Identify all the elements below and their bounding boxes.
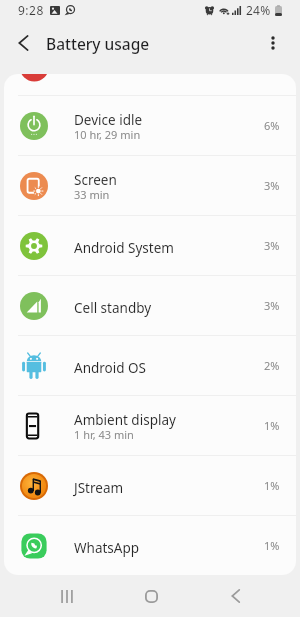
button[interactable]: Screen	[4, 156, 296, 215]
staticText: 6%	[264, 118, 280, 133]
staticText: Ambient display	[74, 411, 176, 429]
button[interactable]: Android System	[4, 216, 296, 275]
button[interactable]: WhatsApp	[4, 516, 296, 575]
staticText: 9:28	[18, 2, 44, 18]
staticText: 2%	[264, 358, 280, 373]
staticText: WhatsApp	[74, 539, 140, 557]
button[interactable]: Device idle	[4, 96, 296, 155]
button[interactable]: Back	[0, 20, 46, 66]
staticText: 24%	[246, 2, 271, 18]
staticText: Cell standby	[74, 299, 152, 317]
staticText: 1%	[264, 418, 280, 433]
staticText: 33 min	[74, 187, 110, 202]
button[interactable]: Home	[109, 575, 193, 617]
staticText: JStream	[74, 479, 124, 497]
staticText: 1%	[264, 538, 280, 553]
button[interactable]: Recents	[25, 575, 109, 617]
staticText: 1%	[264, 478, 280, 493]
staticText: 10 hr, 29 min	[74, 127, 141, 142]
staticText: Device idle	[74, 111, 143, 129]
staticText: 1 hr, 43 min	[74, 427, 134, 442]
button[interactable]: Ambient display	[4, 396, 296, 455]
button[interactable]: JStream	[4, 456, 296, 515]
staticText: 3%	[264, 238, 280, 253]
button[interactable]: Android OS	[4, 336, 296, 395]
button[interactable]: Cell standby	[4, 276, 296, 335]
staticText: 3%	[264, 298, 280, 313]
button[interactable]: Back	[193, 575, 277, 617]
staticText: Android OS	[74, 359, 146, 377]
staticText: Screen	[74, 171, 117, 189]
staticText: Android System	[74, 239, 174, 257]
staticText: Battery usage	[46, 33, 150, 54]
button[interactable]: More options	[250, 20, 296, 66]
staticText: 3%	[264, 178, 280, 193]
